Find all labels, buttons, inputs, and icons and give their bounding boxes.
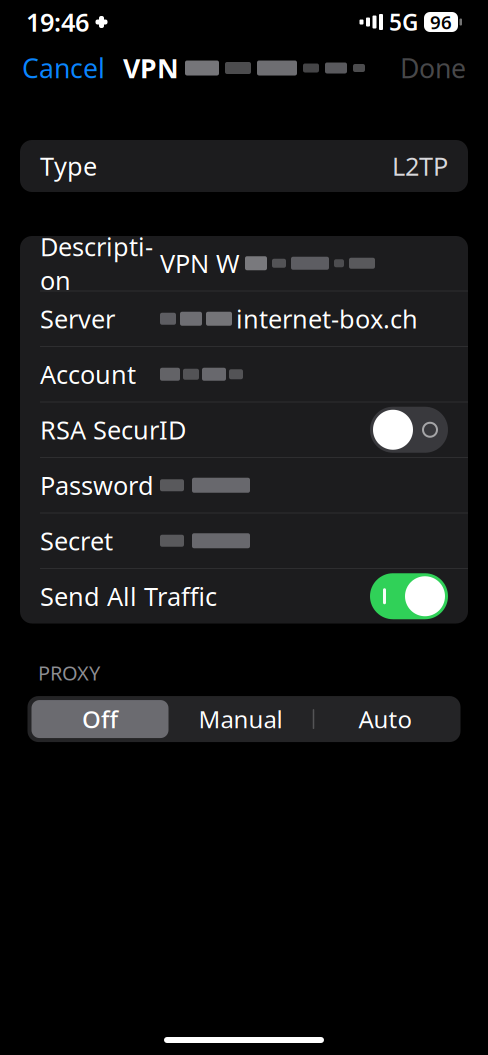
staticText: Secret xyxy=(40,524,113,557)
staticText: 96 xyxy=(430,10,452,34)
button[interactable]: Done xyxy=(378,44,488,92)
button[interactable]: Off xyxy=(31,700,168,738)
staticText: Account xyxy=(40,357,136,391)
staticText: Server xyxy=(40,302,115,335)
staticText: VPN xyxy=(123,50,179,86)
button[interactable]: Send All Traffic xyxy=(20,569,468,623)
staticText: VPN W xyxy=(160,246,240,280)
staticText: Password xyxy=(40,468,154,502)
staticText: Auto xyxy=(358,703,412,735)
staticText: 5G xyxy=(389,7,418,37)
staticText: RSA SecurID xyxy=(40,413,186,446)
staticText: L2TP xyxy=(392,149,448,183)
button[interactable]: RSA SecurID xyxy=(20,402,468,457)
staticText: 19:46 xyxy=(26,5,89,39)
staticText: Manual xyxy=(198,703,282,735)
staticText: Off xyxy=(82,703,118,735)
staticText: Send All Traffic xyxy=(40,579,217,613)
staticText: internet-box.ch xyxy=(236,302,418,335)
button[interactable]: Type xyxy=(20,140,468,192)
staticText: Description xyxy=(40,230,153,297)
staticText: Cancel xyxy=(22,50,105,86)
button[interactable]: Cancel xyxy=(0,44,127,92)
button[interactable]: Manual xyxy=(168,700,312,738)
staticText: Type xyxy=(40,149,97,183)
button[interactable]: Auto xyxy=(314,700,456,738)
staticText: Done xyxy=(400,50,466,86)
staticText: PROXY xyxy=(38,659,100,686)
